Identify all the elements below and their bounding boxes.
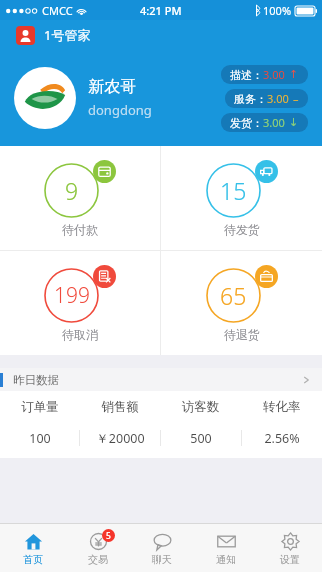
button[interactable]: 昨日数据 <box>0 368 322 391</box>
staticText: 3.00 <box>267 91 289 106</box>
staticText: 昨日数据 <box>13 373 59 387</box>
staticText: ： <box>252 68 263 82</box>
staticText: 1号管家 <box>44 26 91 44</box>
button[interactable]: 设置 <box>258 524 322 572</box>
staticText: 3.00 <box>263 115 285 130</box>
staticText: 访客数 <box>160 399 241 415</box>
staticText: ↑ <box>289 68 299 81</box>
staticText: CMCC <box>42 3 73 18</box>
staticText: 199 <box>54 281 90 310</box>
staticText: 待退货 <box>224 327 260 342</box>
staticText: 设置 <box>280 553 300 566</box>
button[interactable]: 描述 <box>221 65 308 84</box>
button[interactable]: 199 <box>0 251 160 355</box>
staticText: 5 <box>106 530 111 542</box>
staticText: 待取消 <box>62 327 98 342</box>
staticText: 100 <box>29 430 51 447</box>
staticText: – <box>293 91 299 106</box>
staticText: 9 <box>65 175 79 206</box>
button[interactable]: 1号管家 <box>0 20 322 50</box>
staticText: 转化率 <box>241 399 322 415</box>
staticText: 待发货 <box>224 222 260 237</box>
button[interactable]: 通知 <box>194 524 258 572</box>
staticText: 3.00 <box>263 67 285 82</box>
button[interactable]: 发货 <box>221 113 308 132</box>
staticText: 500 <box>190 430 212 447</box>
button[interactable]: 聊天 <box>130 524 194 572</box>
button[interactable]: 5 <box>65 524 130 572</box>
staticText: 通知 <box>216 553 236 566</box>
button[interactable]: 15 <box>161 146 322 250</box>
button[interactable]: 首页 <box>0 524 65 572</box>
staticText: 4:21 PM <box>140 3 182 18</box>
staticText: ： <box>252 116 263 130</box>
staticText: 订单量 <box>0 399 80 415</box>
staticText: 聊天 <box>152 553 172 566</box>
staticText: ￥20000 <box>96 430 145 447</box>
staticText: 服务 <box>234 92 256 106</box>
button[interactable]: 9 <box>0 146 160 250</box>
staticText: 65 <box>220 280 247 311</box>
staticText: dongdong <box>88 101 152 119</box>
staticText: 描述 <box>230 68 252 82</box>
staticText: ： <box>256 92 267 106</box>
staticText: 首页 <box>23 553 43 566</box>
button[interactable]: 65 <box>161 251 322 355</box>
button[interactable]: 服务 <box>225 89 308 108</box>
button[interactable]: 新农哥 <box>0 50 322 146</box>
staticText: 100% <box>263 3 292 18</box>
staticText: 新农哥 <box>88 77 136 97</box>
staticText: ↓ <box>289 116 299 129</box>
staticText: 交易 <box>88 553 108 566</box>
staticText: 待付款 <box>62 222 98 237</box>
staticText: 销售额 <box>80 399 160 415</box>
staticText: 15 <box>220 175 247 206</box>
staticText: 2.56% <box>264 430 300 447</box>
staticText: 发货 <box>230 116 252 130</box>
